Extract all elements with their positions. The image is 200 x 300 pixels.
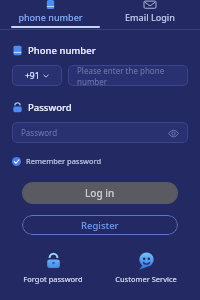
button[interactable]: Register [22, 215, 178, 235]
button[interactable]: Password [12, 122, 188, 143]
staticText: Forgot password [23, 274, 83, 284]
staticText: +91 [25, 70, 40, 82]
staticText: Register [81, 219, 119, 232]
button[interactable]: Show password [167, 127, 179, 139]
button[interactable]: Please enter the phone number [68, 65, 188, 86]
staticText: Email Login [125, 11, 175, 23]
button[interactable]: Log in [22, 182, 178, 204]
staticText: Customer Service [115, 274, 177, 284]
button[interactable]: Remember password [12, 154, 102, 168]
button[interactable]: Email Login [100, 0, 200, 26]
staticText: Password [21, 127, 167, 138]
staticText: phone number [18, 11, 83, 23]
staticText: Phone number [28, 44, 96, 57]
staticText: Remember password [26, 156, 102, 166]
staticText: Log in [85, 186, 115, 200]
staticText: Password [28, 101, 72, 114]
button[interactable]: Forgot password [15, 250, 91, 286]
button[interactable]: Customer Service [107, 250, 185, 286]
button[interactable]: phone number [0, 0, 100, 26]
button[interactable]: +91 [12, 65, 62, 86]
staticText: Please enter the phone number [77, 65, 179, 86]
